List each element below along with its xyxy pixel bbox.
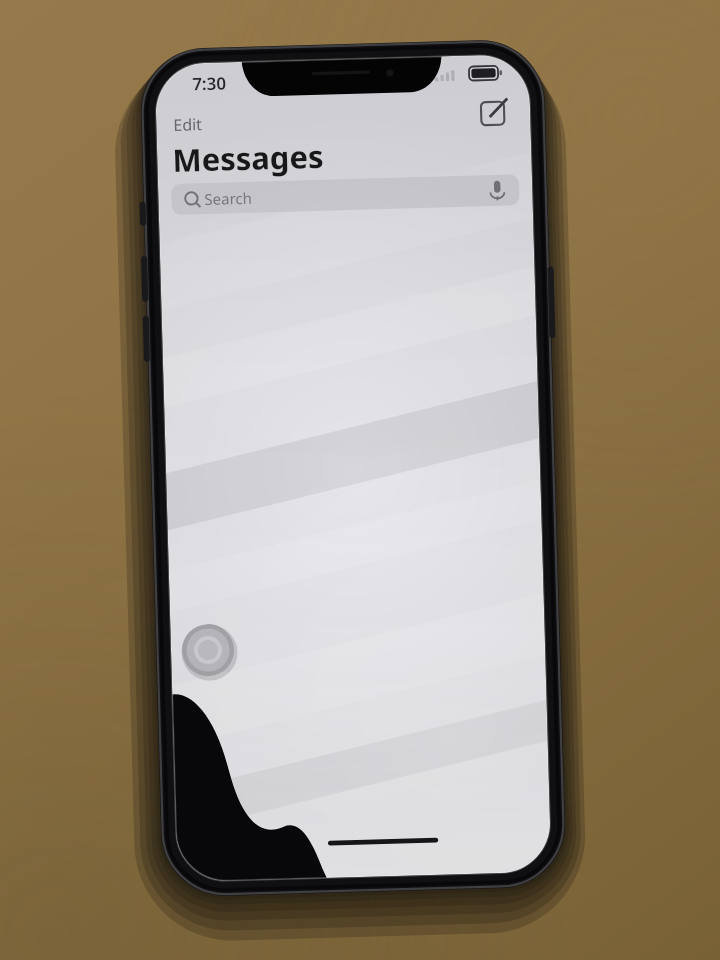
- button[interactable]: iPhone showing Messages app: [0, 0, 720, 960]
